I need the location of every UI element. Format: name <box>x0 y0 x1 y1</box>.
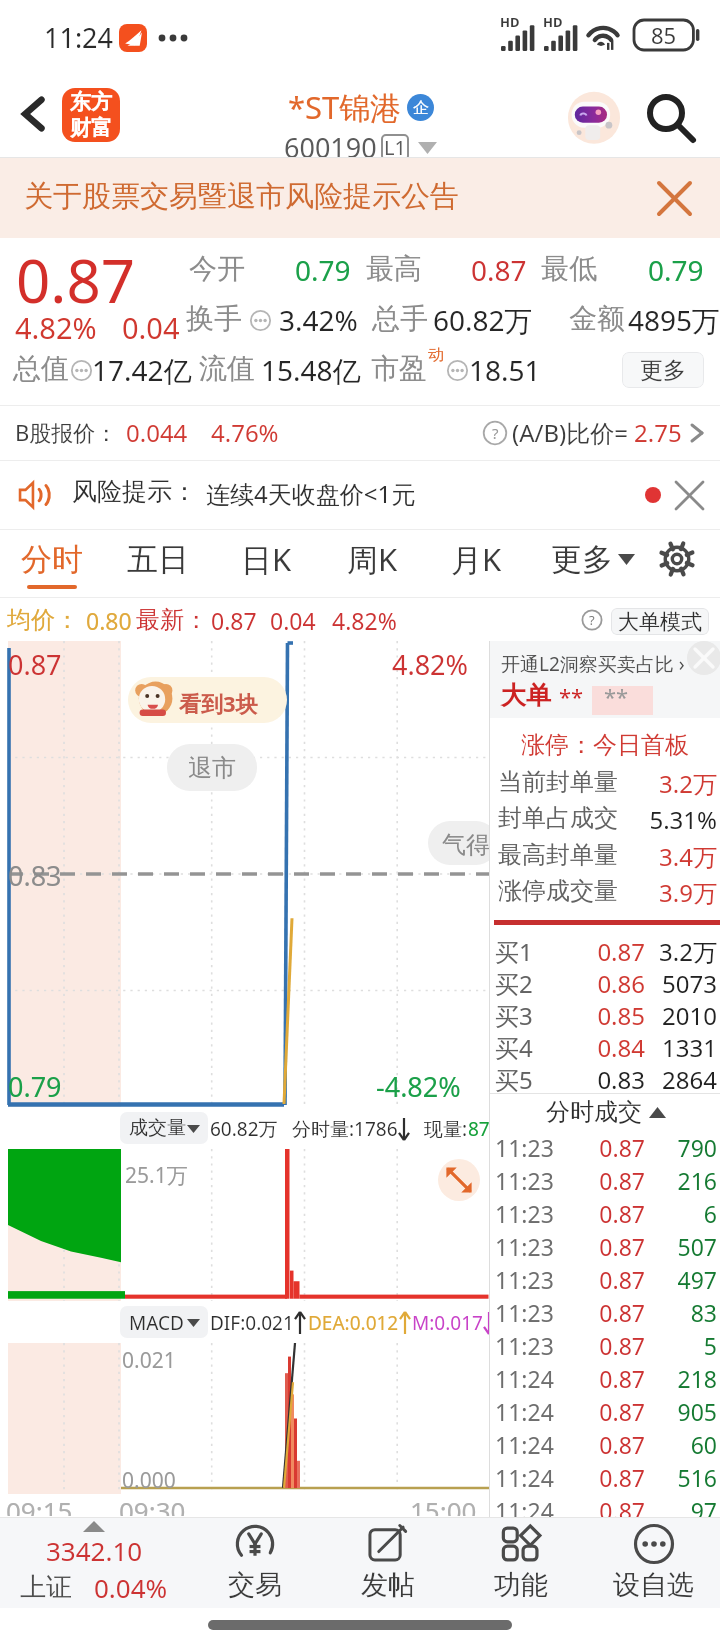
staticText: 涨停成交量 <box>498 876 618 906</box>
button[interactable]: 开通L2洞察买卖占比 › <box>501 651 685 677</box>
button[interactable] <box>489 1026 720 1058</box>
staticText: 最高封单量 <box>498 840 618 870</box>
staticText: M:0.017 <box>412 1310 483 1336</box>
button[interactable]: 分时 <box>0 529 104 597</box>
staticText: 分时量:1786 <box>292 1116 398 1142</box>
button[interactable]: Back <box>4 84 64 144</box>
staticText: 17.42亿 <box>92 351 192 389</box>
staticText: 11:24 <box>495 1429 554 1460</box>
button[interactable]: 成交量 <box>120 1112 208 1144</box>
button[interactable] <box>489 994 720 1026</box>
staticText: ? <box>589 611 595 629</box>
staticText: 83 <box>647 1297 717 1328</box>
staticText: 85 <box>651 20 677 50</box>
staticText: 总值 <box>13 351 69 386</box>
button[interactable]: Close L2 panel <box>687 641 720 675</box>
staticText: 3.2万 <box>609 767 717 800</box>
staticText: 0.87 <box>579 1462 645 1493</box>
staticText: 4895万 <box>628 301 720 339</box>
staticText: 97 <box>647 1495 717 1526</box>
staticText: 买4 <box>495 1031 533 1064</box>
staticText: 216 <box>647 1165 717 1196</box>
button[interactable]: 交易 <box>188 1517 321 1608</box>
staticText: 600190 <box>284 129 377 166</box>
button[interactable]: 设自选 <box>587 1517 720 1608</box>
staticText: 风险提示： <box>72 476 197 507</box>
button[interactable]: Help <box>582 610 602 630</box>
button[interactable]: AI assistant <box>563 88 625 150</box>
staticText: 0.83 <box>8 857 62 894</box>
button[interactable]: 周K <box>320 529 424 597</box>
button[interactable]: 月K <box>424 529 528 597</box>
button[interactable] <box>489 962 720 994</box>
staticText: 6 <box>647 1198 717 1229</box>
staticText: 3.2万 <box>647 935 717 968</box>
staticText: 企 <box>413 98 429 118</box>
staticText: 0.000 <box>122 1466 176 1495</box>
staticText: HD <box>543 13 563 31</box>
staticText: 11:24 <box>495 1363 554 1394</box>
staticText: 今开 <box>189 251 245 286</box>
button[interactable]: Chart settings <box>648 529 706 597</box>
staticText: 2010 <box>647 999 717 1032</box>
staticText: 关于股票交易暨退市风险提示公告 <box>24 178 459 215</box>
staticText: 0.87 <box>579 1396 645 1427</box>
staticText: 0.79 <box>8 1068 62 1105</box>
button[interactable]: 五日 <box>106 529 210 597</box>
staticText: 上证 <box>20 1571 72 1604</box>
staticText: ** <box>559 681 584 711</box>
button[interactable]: East Money home <box>62 88 120 142</box>
staticText: 当前封单量 <box>498 767 618 797</box>
button[interactable]: 关于股票交易暨退市风险提示公告 <box>0 157 720 238</box>
button[interactable]: MACD <box>120 1306 208 1338</box>
staticText: 4.82% <box>332 605 397 636</box>
staticText: *ST锦港 <box>288 86 402 128</box>
button[interactable]: Close risk tip <box>668 474 710 516</box>
staticText: 最低 <box>541 251 597 286</box>
staticText: 3.9万 <box>609 876 717 909</box>
staticText: 0.87 <box>579 1132 645 1163</box>
staticText: 60 <box>647 1429 717 1460</box>
staticText: 0.87 <box>579 1297 645 1328</box>
staticText: L1 <box>384 134 406 161</box>
staticText: 金额 <box>569 301 625 336</box>
button[interactable]: 更多 <box>540 529 646 597</box>
button[interactable]: 发帖 <box>321 1517 454 1608</box>
staticText: 流值 <box>199 351 255 386</box>
button[interactable]: 3342.10 <box>0 1517 188 1608</box>
button[interactable]: Close announcement <box>650 174 698 222</box>
staticText: 更多 <box>551 540 613 579</box>
staticText: 4.76% <box>211 416 279 449</box>
staticText: 0.021 <box>122 1346 176 1375</box>
button[interactable]: 看到3块 <box>128 677 287 723</box>
button[interactable] <box>489 1058 720 1090</box>
staticText: 退市 <box>188 753 236 783</box>
button[interactable] <box>489 930 720 962</box>
button[interactable]: 分时成交 <box>490 1094 720 1130</box>
staticText: 60.82万 <box>433 301 533 339</box>
staticText: 11:23 <box>495 1330 554 1361</box>
staticText: 0.044 <box>126 416 188 449</box>
button[interactable]: 大单模式 <box>611 608 709 635</box>
staticText: 0.87 <box>16 239 136 321</box>
staticText: 0.04 <box>270 605 316 636</box>
button[interactable]: Search <box>640 88 702 150</box>
staticText: 动 <box>428 345 444 365</box>
staticText: 均价： <box>7 605 79 635</box>
staticText: 封单占成交 <box>498 803 618 833</box>
button[interactable]: 功能 <box>454 1517 587 1608</box>
staticText: 11:24 <box>495 1495 554 1526</box>
button[interactable]: Fullscreen chart <box>438 1159 480 1201</box>
staticText: 现量: <box>424 1116 468 1142</box>
button[interactable]: 日K <box>214 529 318 597</box>
staticText: 周K <box>347 538 398 580</box>
staticText: 最高 <box>366 251 422 286</box>
button[interactable]: 更多 <box>622 352 704 388</box>
staticText: 功能 <box>494 1568 548 1602</box>
staticText: 2.75 <box>634 416 682 449</box>
staticText: 分时 <box>21 540 83 579</box>
staticText: -4.82% <box>376 1068 461 1105</box>
button[interactable]: B股报价： <box>0 405 720 460</box>
staticText: 0.87 <box>579 1363 645 1394</box>
staticText: 0.84 <box>569 1031 645 1064</box>
